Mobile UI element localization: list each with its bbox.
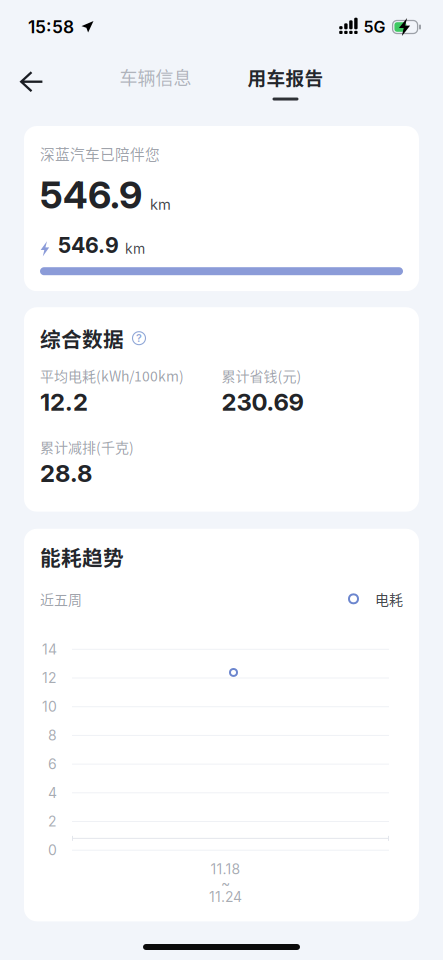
staticText: 14 (42, 641, 57, 658)
staticText: ? (136, 332, 142, 345)
staticText: km (125, 240, 145, 257)
staticText: 230.69 (221, 387, 303, 416)
staticText: 用车报告 (247, 63, 323, 90)
button[interactable]: Back (8, 59, 56, 105)
staticText: 电耗 (375, 589, 403, 609)
staticText: 11.18 (210, 861, 240, 877)
staticText: 深蓝汽车已陪伴您 (40, 143, 160, 164)
staticText: 5G (364, 17, 386, 37)
staticText: 能耗趋势 (40, 542, 124, 572)
staticText: 平均电耗(kWh/100km) (40, 365, 184, 385)
staticText: 车辆信息 (119, 64, 191, 90)
staticText: 2 (48, 813, 57, 830)
staticText: 8 (48, 727, 57, 744)
staticText: km (150, 196, 171, 213)
staticText: ~ (221, 874, 230, 891)
staticText: 28.8 (40, 459, 92, 488)
staticText: 12.2 (40, 387, 88, 416)
button[interactable]: 车辆信息 (109, 59, 201, 105)
staticText: 10 (42, 698, 57, 715)
staticText: 4 (48, 784, 57, 801)
staticText: 546.9 (58, 232, 119, 258)
staticText: 累计减排(千克) (40, 436, 134, 457)
staticText: 近五周 (40, 589, 82, 609)
staticText: 0 (48, 842, 57, 859)
staticText: 12 (42, 669, 57, 686)
button[interactable]: 用车报告 (237, 58, 333, 105)
staticText: 6 (48, 756, 57, 772)
staticText: 综合数据 (40, 323, 124, 353)
staticText: 累计省钱(元) (221, 365, 301, 385)
staticText: 11.24 (209, 888, 242, 905)
staticText: 15:58 (28, 16, 74, 37)
staticText: 546.9 (40, 172, 142, 217)
